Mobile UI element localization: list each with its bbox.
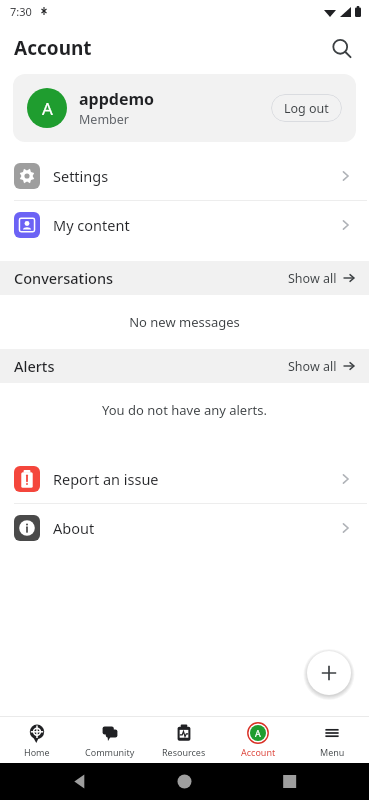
staticText: Menu xyxy=(320,746,345,758)
staticText: Account xyxy=(241,746,276,758)
staticText: Member xyxy=(79,111,129,128)
staticText: About xyxy=(53,518,339,538)
staticText: My content xyxy=(53,215,339,235)
button[interactable]: Home xyxy=(0,717,73,763)
button[interactable]: My content xyxy=(0,201,369,249)
staticText: A xyxy=(42,97,53,120)
staticText: Account xyxy=(14,35,92,61)
staticText: appdemo xyxy=(79,88,155,110)
button[interactable]: Add xyxy=(307,651,351,695)
button[interactable]: About xyxy=(0,504,369,552)
button[interactable]: Settings xyxy=(0,152,369,200)
staticText: Show all xyxy=(288,358,337,375)
button[interactable]: Log out xyxy=(271,94,342,122)
staticText: 7:30 xyxy=(10,4,32,19)
button[interactable]: Menu xyxy=(295,717,369,763)
staticText: A xyxy=(255,727,261,739)
button[interactable]: A xyxy=(13,74,356,142)
staticText: You do not have any alerts. xyxy=(102,401,267,419)
button[interactable]: A xyxy=(221,717,295,763)
staticText: Log out xyxy=(284,100,329,117)
staticText: Community xyxy=(85,746,135,758)
staticText: Show all xyxy=(288,270,337,287)
staticText: Report an issue xyxy=(53,469,339,489)
staticText: Resources xyxy=(162,746,206,758)
staticText: Settings xyxy=(53,166,339,186)
button[interactable]: Conversations xyxy=(0,261,369,295)
button[interactable]: Community xyxy=(73,717,147,763)
staticText: Home xyxy=(24,746,50,758)
staticText: Conversations xyxy=(14,268,288,288)
button[interactable]: Resources xyxy=(147,717,221,763)
staticText: No new messages xyxy=(129,313,240,331)
button[interactable]: Search xyxy=(321,28,361,68)
button[interactable]: Report an issue xyxy=(0,455,369,503)
button[interactable]: Alerts xyxy=(0,349,369,383)
staticText: Alerts xyxy=(14,356,288,376)
